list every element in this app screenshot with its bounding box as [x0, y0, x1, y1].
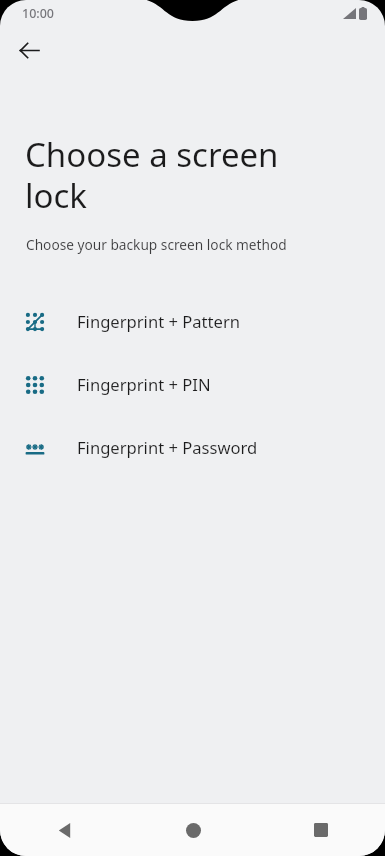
button[interactable]: Home — [129, 804, 257, 856]
staticText: Fingerprint + Pattern — [77, 310, 241, 333]
staticText: Fingerprint + PIN — [77, 373, 211, 396]
button[interactable]: Fingerprint + PIN — [0, 353, 385, 416]
staticText: Fingerprint + Password — [77, 436, 258, 459]
button[interactable]: Back — [0, 804, 129, 856]
button[interactable]: Recent apps — [257, 804, 385, 856]
staticText: Choose your backup screen lock method — [26, 235, 361, 254]
button[interactable]: Back — [8, 29, 50, 71]
staticText: 10:00 — [22, 5, 55, 22]
staticText: Choose a screen lock — [25, 132, 329, 218]
button[interactable]: Fingerprint + Password — [0, 416, 385, 479]
button[interactable]: Fingerprint + Pattern — [0, 290, 385, 353]
